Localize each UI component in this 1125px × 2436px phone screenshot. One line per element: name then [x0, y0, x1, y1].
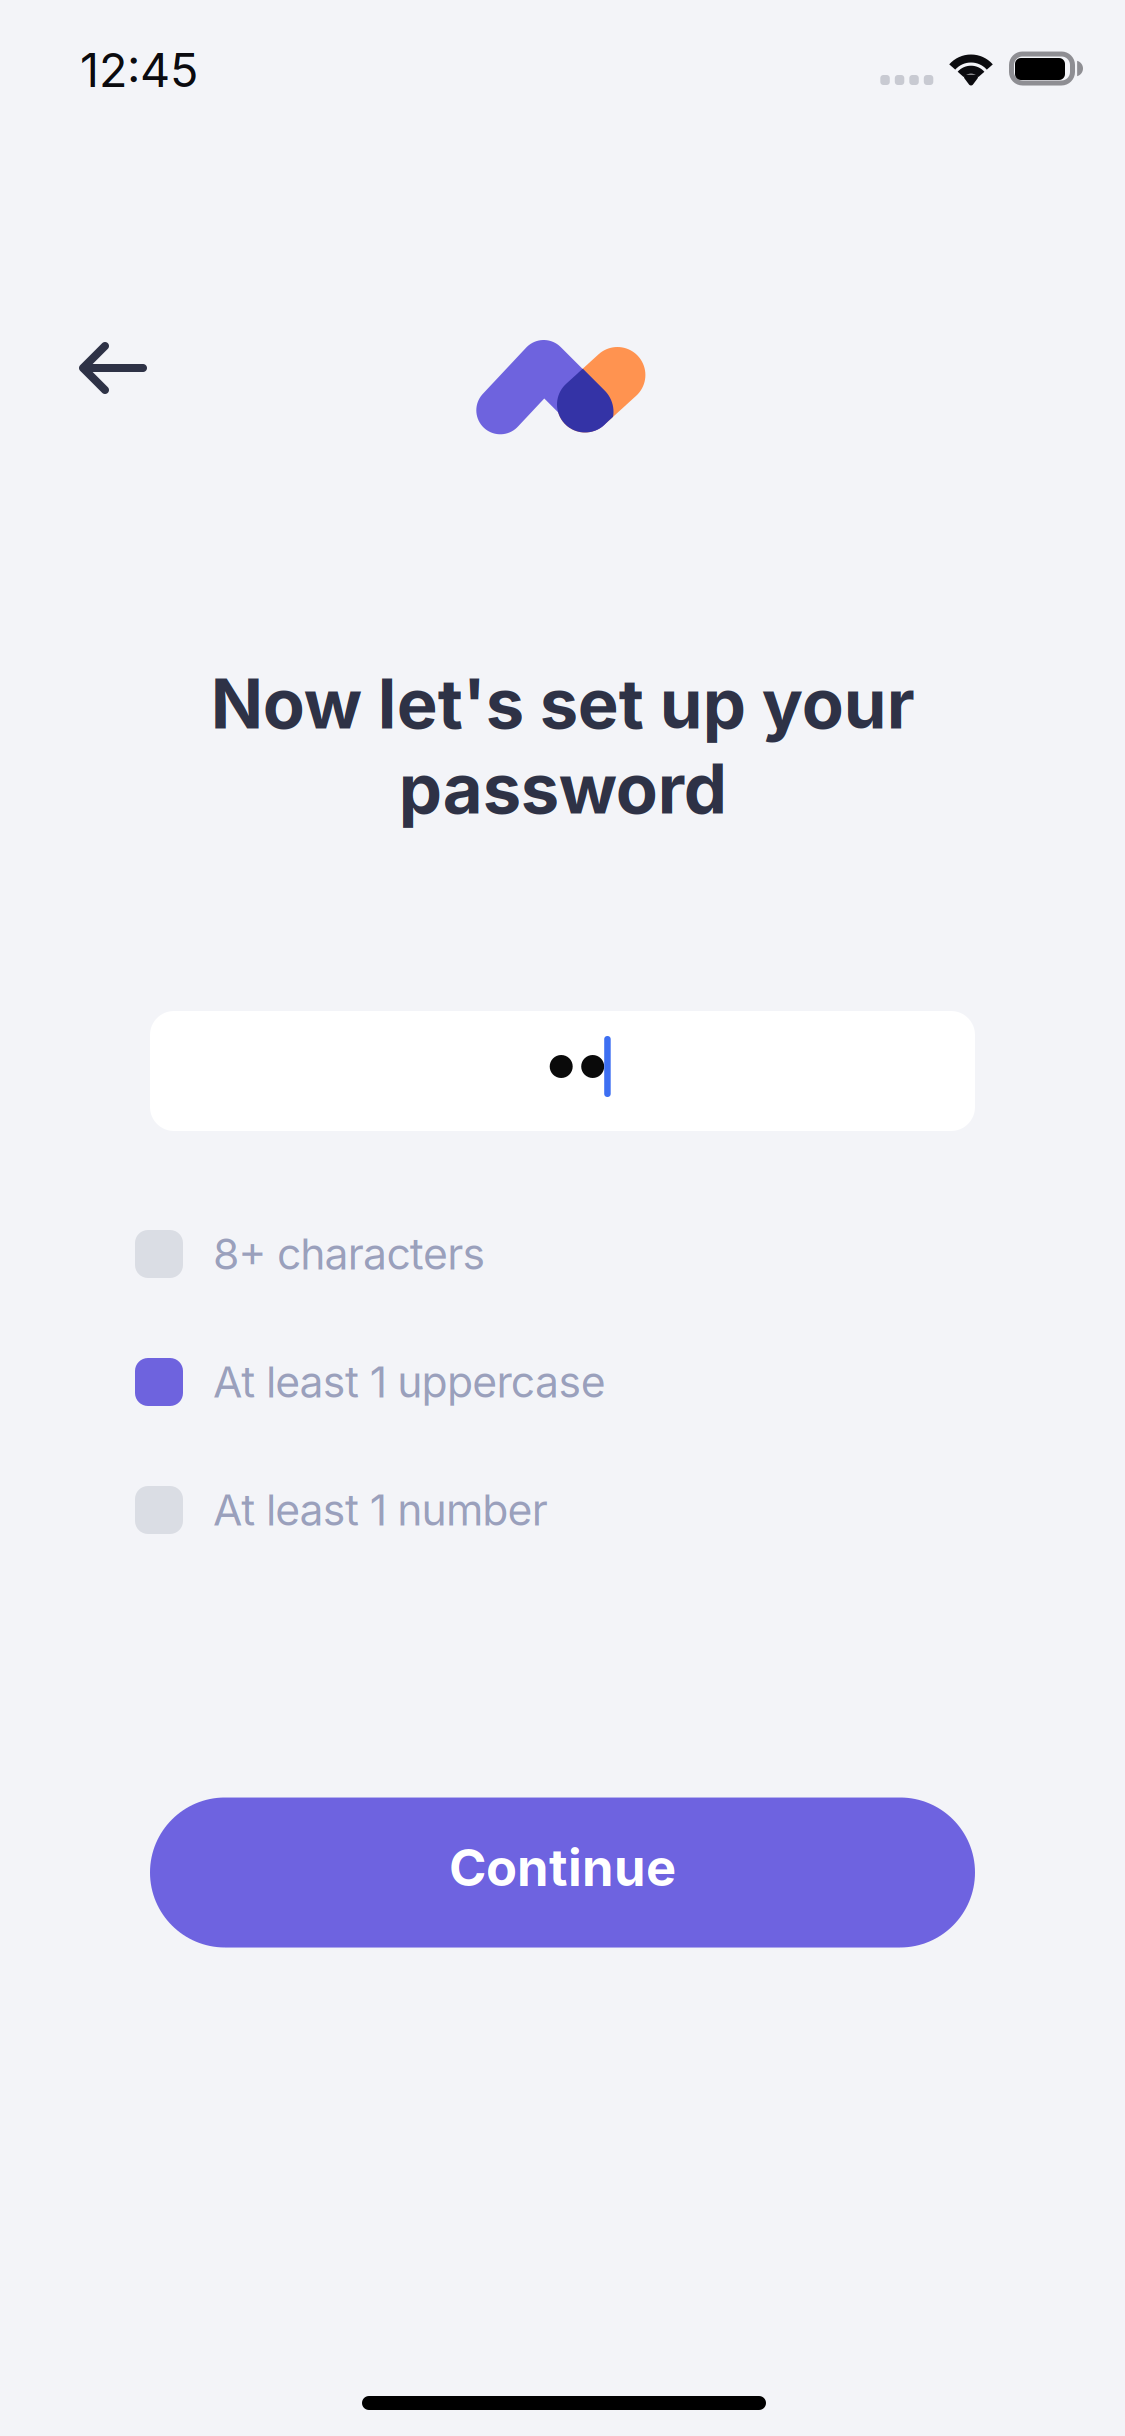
- staticText: At least 1 number: [213, 1484, 548, 1536]
- staticText: Continue: [449, 1837, 676, 1898]
- button[interactable]: Continue: [150, 1797, 975, 1947]
- staticText: 12:45: [80, 42, 198, 98]
- staticText: At least 1 uppercase: [213, 1356, 606, 1408]
- staticText: 8+ characters: [213, 1228, 486, 1280]
- staticText: Now let's set up your password: [210, 662, 914, 830]
- button[interactable]: Back: [48, 313, 178, 423]
